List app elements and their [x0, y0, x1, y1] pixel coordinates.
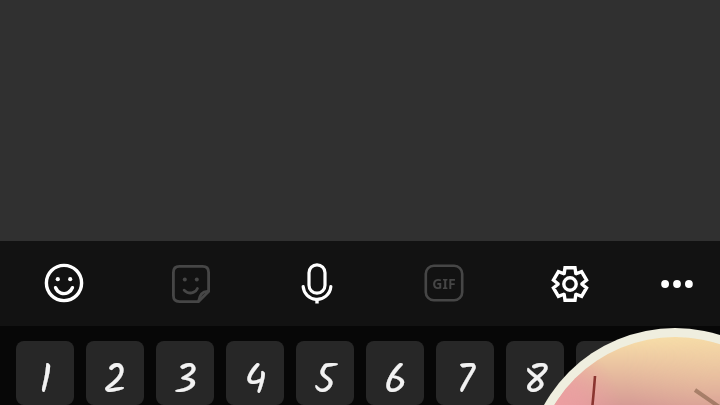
button[interactable]: 3	[156, 341, 214, 405]
button[interactable]: 1	[16, 341, 74, 405]
button[interactable]: 0	[646, 341, 704, 405]
button[interactable]: 9	[576, 341, 634, 405]
button[interactable]: 7	[436, 341, 494, 405]
button[interactable]: 5	[296, 341, 354, 405]
button[interactable]: GIF	[416, 255, 472, 311]
staticText: 2	[103, 350, 127, 405]
staticText: 7	[456, 350, 475, 405]
button[interactable]: 6	[366, 341, 424, 405]
button[interactable]: Stickers	[163, 256, 219, 312]
button[interactable]: Settings	[542, 256, 598, 312]
button[interactable]: 8	[506, 341, 564, 405]
staticText: 8	[523, 350, 548, 405]
staticText: GIF	[432, 274, 456, 293]
staticText: 5	[314, 350, 336, 405]
staticText: 3	[174, 350, 197, 405]
button[interactable]: Emoji	[36, 255, 92, 311]
staticText: 9	[595, 350, 615, 405]
button[interactable]: Sticker preview	[525, 328, 720, 405]
staticText: 4	[244, 350, 267, 405]
button[interactable]: 2	[86, 341, 144, 405]
staticText: 0	[665, 350, 685, 405]
button[interactable]: More options	[649, 256, 705, 312]
button[interactable]: Voice input	[289, 255, 345, 311]
button[interactable]: 4	[226, 341, 284, 405]
staticText: 1	[39, 350, 52, 405]
staticText: 6	[384, 350, 407, 405]
